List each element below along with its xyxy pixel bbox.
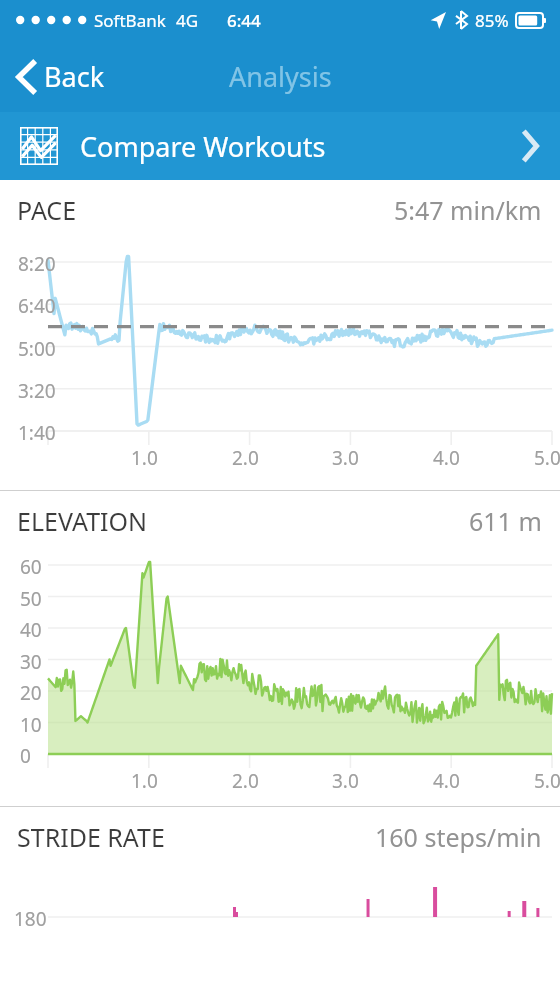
staticText: 4.0 [433, 768, 460, 794]
staticText: Compare Workouts [80, 128, 326, 165]
staticText: 160 steps/min [375, 820, 542, 854]
staticText: 5.0 [534, 445, 560, 471]
staticText: STRIDE RATE [17, 820, 165, 854]
staticText: 4G [176, 9, 199, 32]
staticText: 6:44 [227, 9, 261, 32]
staticText: 2.0 [232, 445, 259, 471]
staticText: 2.0 [232, 768, 259, 794]
staticText: 1:40 [18, 420, 56, 446]
staticText: 60 [20, 554, 42, 580]
staticText: 3.0 [332, 768, 359, 794]
button[interactable]: Compare Workouts [0, 112, 560, 180]
staticText: ELEVATION [17, 504, 148, 538]
staticText: Back [44, 58, 105, 95]
staticText: 611 m [469, 504, 542, 538]
staticText: 5.0 [534, 768, 560, 794]
staticText: 6:40 [18, 293, 56, 319]
staticText: 180 [14, 906, 47, 932]
staticText: 1.0 [131, 768, 158, 794]
staticText: 8:20 [18, 251, 56, 277]
staticText: 1.0 [131, 445, 158, 471]
staticText: 5:47 min/km [394, 193, 542, 227]
staticText: 20 [20, 680, 42, 706]
staticText: 85% [475, 9, 509, 32]
staticText: PACE [17, 193, 77, 227]
staticText: SoftBank [94, 9, 166, 32]
button[interactable]: Back [12, 52, 111, 101]
staticText: 3.0 [332, 445, 359, 471]
staticText: Analysis [229, 58, 332, 95]
staticText: 50 [20, 586, 42, 612]
staticText: 5:00 [18, 336, 56, 362]
staticText: 30 [20, 649, 42, 675]
staticText: 4.0 [433, 445, 460, 471]
staticText: 40 [20, 617, 42, 643]
staticText: 0 [20, 743, 31, 769]
staticText: 10 [20, 712, 42, 738]
staticText: 3:20 [18, 378, 56, 404]
